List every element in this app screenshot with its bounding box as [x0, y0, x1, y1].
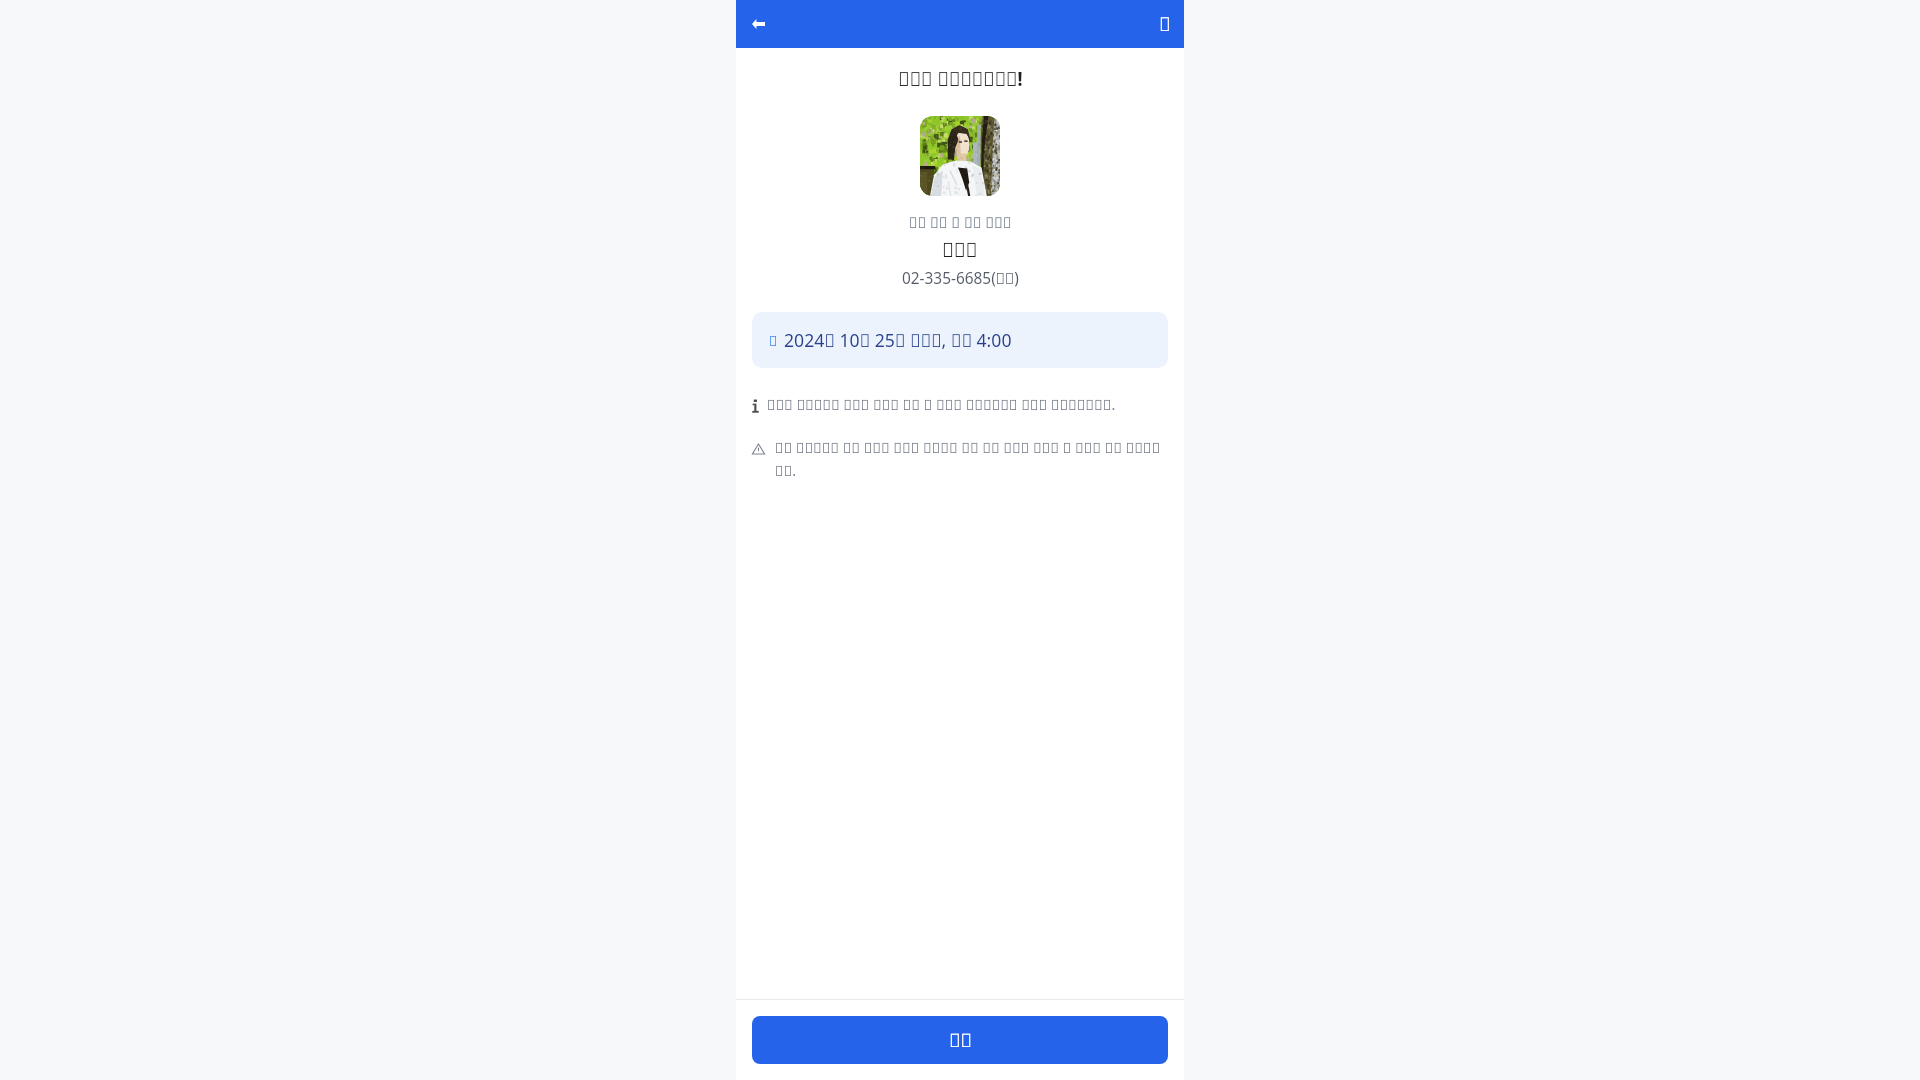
- staticText: 02-335-6685(𯿾𯿾): [902, 268, 1019, 289]
- staticText: 2024𯿾 10𯿾 25𯿾 𯿾𯿾𯿾, 𯿾𯿾 4:00: [784, 328, 1012, 352]
- button[interactable]: More options: [1149, 8, 1181, 40]
- staticText: 𯿾: [769, 331, 778, 350]
- staticText: 𯿾: [1159, 11, 1171, 37]
- staticText: 𯿾𯿾: [949, 1027, 972, 1053]
- staticText: 𯿾𯿾 𯿾𯿾 𯿾 𯿾𯿾 𯿾𯿾𯿾: [909, 212, 1012, 232]
- staticText: 𯿾𯿾 𯿾𯿾𯿾𯿾𯿾 𯿾𯿾 𯿾𯿾𯿾 𯿾𯿾𯿾 𯿾𯿾𯿾𯿾 𯿾𯿾 𯿾𯿾 𯿾𯿾𯿾 𯿾𯿾𯿾 𯿾…: [775, 438, 1168, 480]
- button[interactable]: 𯿾𯿾: [752, 1016, 1168, 1064]
- button[interactable]: Back: [742, 8, 774, 40]
- staticText: 𯿾𯿾𯿾: [942, 236, 978, 263]
- staticText: 𯿾𯿾𯿾 𯿾𯿾𯿾𯿾𯿾 𯿾𯿾𯿾 𯿾𯿾𯿾 𯿾𯿾 𯿾 𯿾𯿾𯿾 𯿾𯿾𯿾𯿾𯿾𯿾 𯿾𯿾𯿾 𯿾𯿾…: [767, 395, 1116, 415]
- staticText: 𯿾𯿾𯿾 𯿾𯿾𯿾𯿾𯿾𯿾𯿾!: [898, 65, 1023, 91]
